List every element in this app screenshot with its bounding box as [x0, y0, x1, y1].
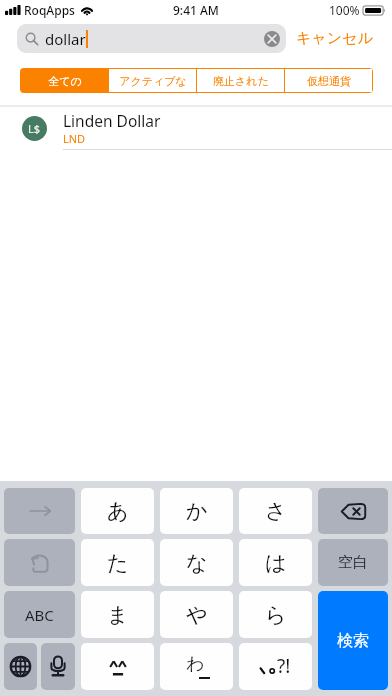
other: Clear text [264, 31, 280, 47]
button[interactable]: Change keyboard [4, 643, 37, 690]
button[interactable]: wa [160, 643, 233, 690]
staticText: 100% [329, 2, 360, 18]
button[interactable]: dollar [17, 24, 286, 53]
button[interactable]: 廃止された [197, 69, 284, 92]
button[interactable]: た [81, 539, 154, 586]
staticText: L$ [28, 121, 41, 136]
staticText: Linden Dollar [63, 110, 161, 131]
button[interactable]: や [160, 591, 233, 638]
staticText: 空白 [338, 553, 368, 572]
button[interactable]: ま [81, 591, 154, 638]
staticText: や [186, 602, 208, 628]
staticText: ABC [25, 605, 54, 625]
staticText: LND [63, 131, 86, 146]
button[interactable]: 全ての [21, 69, 108, 92]
button[interactable]: Next candidate [4, 488, 75, 534]
staticText: は [265, 550, 287, 576]
staticText: 仮想通貨 [307, 74, 351, 88]
button[interactable]: か [160, 488, 233, 534]
staticText: 検索 [337, 631, 369, 651]
staticText: 9:41 AM [173, 2, 219, 18]
staticText: アクティブな [119, 74, 187, 88]
button[interactable]: 空白 [318, 539, 388, 586]
button[interactable]: ら [239, 591, 312, 638]
button[interactable]: Backspace [318, 488, 388, 534]
button[interactable]: 仮想通貨 [285, 69, 372, 92]
staticText: さ [265, 498, 287, 524]
button[interactable]: アクティブな [109, 69, 196, 92]
staticText: 廃止された [213, 74, 269, 88]
staticText: わ [186, 653, 205, 676]
staticText: た [107, 550, 129, 576]
staticText: RoqApps [24, 2, 75, 18]
staticText: か [186, 498, 208, 524]
staticText: あ [107, 498, 129, 524]
button[interactable]: さ [239, 488, 312, 534]
staticText: ま [107, 602, 129, 628]
button[interactable]: 検索 [318, 591, 388, 690]
staticText: な [186, 550, 208, 576]
button[interactable]: Kaomoji [81, 643, 154, 690]
button[interactable]: L$ [0, 107, 392, 149]
staticText: 全ての [48, 74, 82, 88]
staticText: dollar [45, 29, 86, 49]
button[interactable]: ABC [4, 591, 75, 638]
button[interactable]: Voice input [41, 643, 75, 690]
button[interactable]: Undo [4, 539, 75, 586]
button[interactable]: キャンセル [295, 26, 374, 51]
button[interactable]: Punctuation [239, 643, 312, 690]
button[interactable]: あ [81, 488, 154, 534]
button[interactable]: な [160, 539, 233, 586]
staticText: ら [265, 602, 287, 628]
button[interactable]: は [239, 539, 312, 586]
staticText: ?! [277, 653, 291, 679]
staticText: キャンセル [296, 29, 373, 48]
